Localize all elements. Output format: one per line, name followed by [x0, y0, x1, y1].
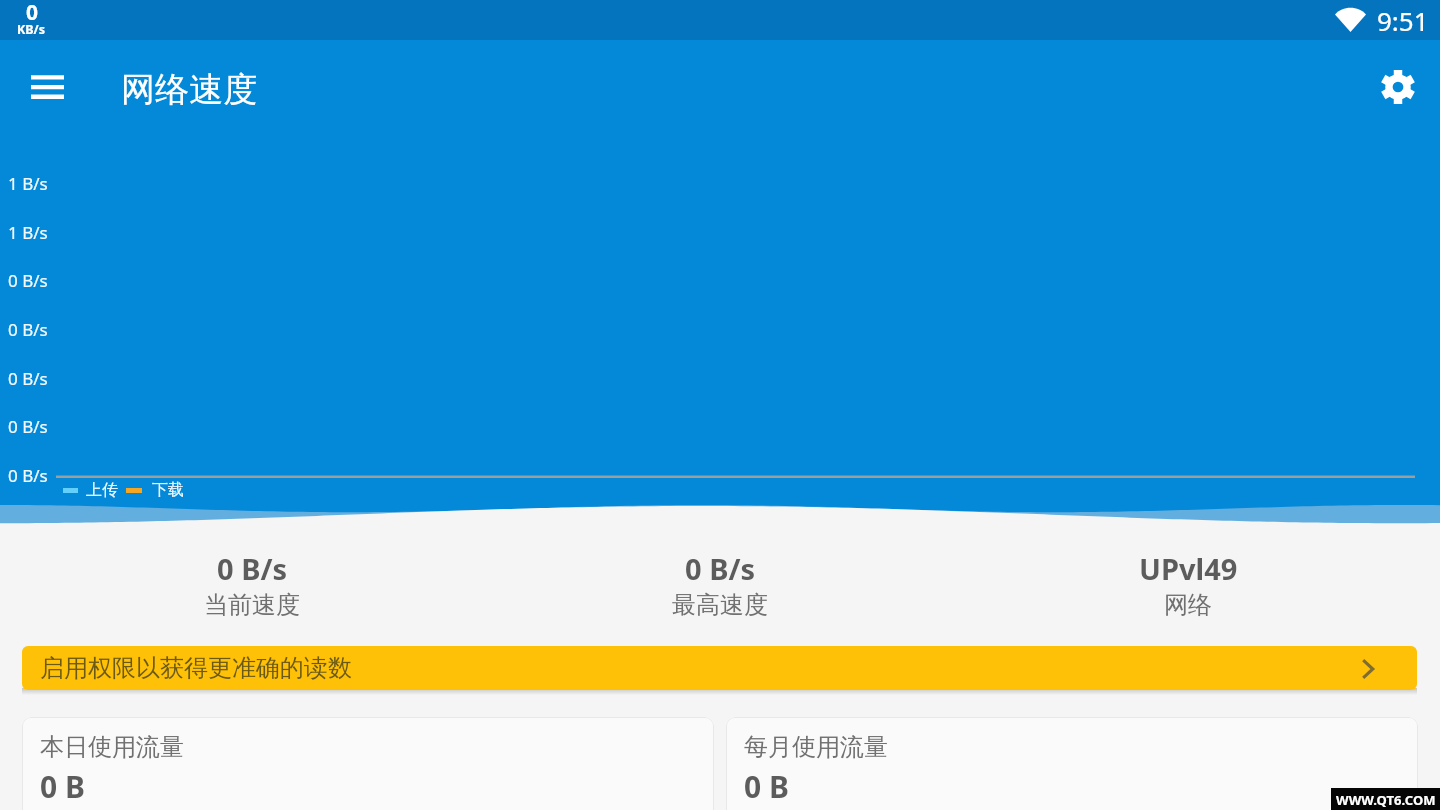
button[interactable]: 0 B/s	[18, 549, 486, 620]
staticText: 9:51	[1377, 3, 1429, 38]
staticText: KB/s	[17, 21, 46, 38]
staticText: 最高速度	[672, 590, 768, 620]
staticText: 下载	[152, 480, 184, 500]
staticText: 0 B/s	[8, 318, 48, 341]
staticText: 0 B/s	[8, 269, 48, 292]
button[interactable]: Menu	[23, 63, 71, 111]
staticText: 上传	[86, 480, 118, 500]
staticText: 0 B/s	[8, 415, 48, 438]
staticText: 本日使用流量	[40, 732, 184, 762]
staticText: 0 B/s	[217, 549, 288, 588]
button[interactable]: 每月使用流量	[726, 717, 1418, 810]
staticText: 1 B/s	[8, 172, 48, 195]
staticText: 0	[26, 0, 39, 27]
staticText: 1 B/s	[8, 221, 48, 244]
button[interactable]: UPvl49	[954, 549, 1422, 620]
staticText: 0 B	[40, 766, 85, 807]
staticText: WWW.QT6.COM	[1336, 791, 1436, 809]
staticText: 当前速度	[204, 590, 300, 620]
button[interactable]: Settings	[1374, 63, 1422, 111]
staticText: 网络	[1164, 590, 1212, 620]
staticText: 启用权限以获得更准确的读数	[40, 653, 352, 683]
staticText: 0 B/s	[8, 367, 48, 390]
staticText: UPvl49	[1139, 549, 1238, 588]
staticText: 0 B/s	[685, 549, 756, 588]
staticText: 每月使用流量	[744, 732, 888, 762]
button[interactable]: 0 B/s	[486, 549, 954, 620]
staticText: 网络速度	[121, 68, 257, 111]
button[interactable]: 启用权限以获得更准确的读数	[22, 646, 1417, 690]
staticText: 0 B	[744, 766, 789, 807]
staticText: 0 B/s	[8, 464, 48, 487]
button[interactable]: 本日使用流量	[22, 717, 714, 810]
